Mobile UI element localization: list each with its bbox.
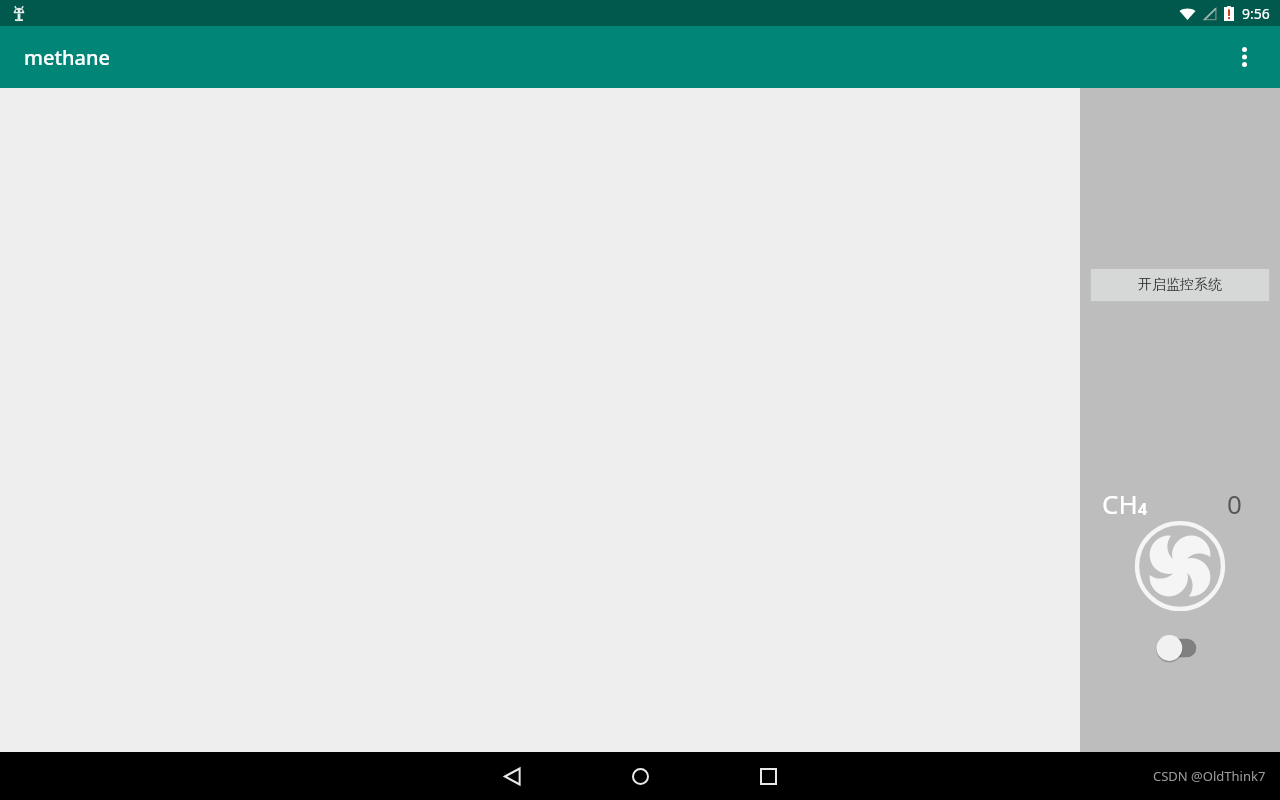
button[interactable]: 开启监控系统 — [1090, 268, 1270, 302]
button[interactable]: Fan power toggle — [1152, 633, 1208, 663]
staticText: CSDN @OldThink7 — [1153, 767, 1266, 785]
staticText: 4 — [1138, 498, 1148, 520]
staticText: 0 — [1227, 486, 1242, 521]
button[interactable]: Back — [488, 752, 536, 800]
button[interactable]: Recent apps — [744, 752, 792, 800]
staticText: 开启监控系统 — [1138, 276, 1222, 294]
staticText: CH — [1102, 486, 1138, 521]
button[interactable]: Fan — [1132, 518, 1228, 614]
button[interactable]: More options — [1220, 33, 1268, 81]
staticText: 9:56 — [1242, 4, 1270, 23]
button[interactable]: Home — [616, 752, 664, 800]
staticText: methane — [24, 44, 111, 71]
